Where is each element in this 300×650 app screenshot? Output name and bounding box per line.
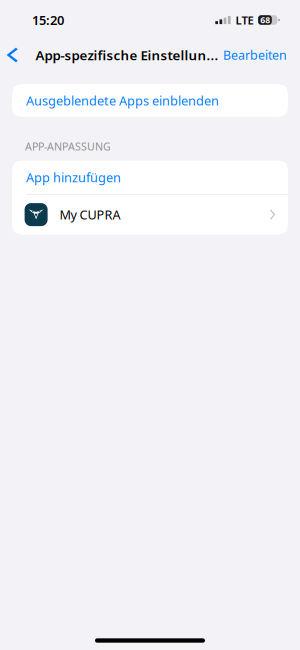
button[interactable]: My CUPRA [12,195,288,235]
staticText: 68 [260,14,270,26]
button[interactable]: Bearbeiten [215,42,300,68]
button[interactable]: Back [0,43,26,67]
button[interactable]: App hinzufügen [12,160,288,194]
staticText: Ausgeblendete Apps einblenden [26,92,219,109]
button[interactable]: Ausgeblendete Apps einblenden [12,84,288,117]
staticText: 15:20 [32,11,64,29]
staticText: Bearbeiten [223,47,287,63]
staticText: App hinzufügen [26,169,121,186]
staticText: APP-ANPASSUNG [25,139,111,153]
staticText: LTE [236,12,254,28]
staticText: App-spezifische Einstellun... [35,46,218,64]
staticText: My CUPRA [60,206,121,223]
